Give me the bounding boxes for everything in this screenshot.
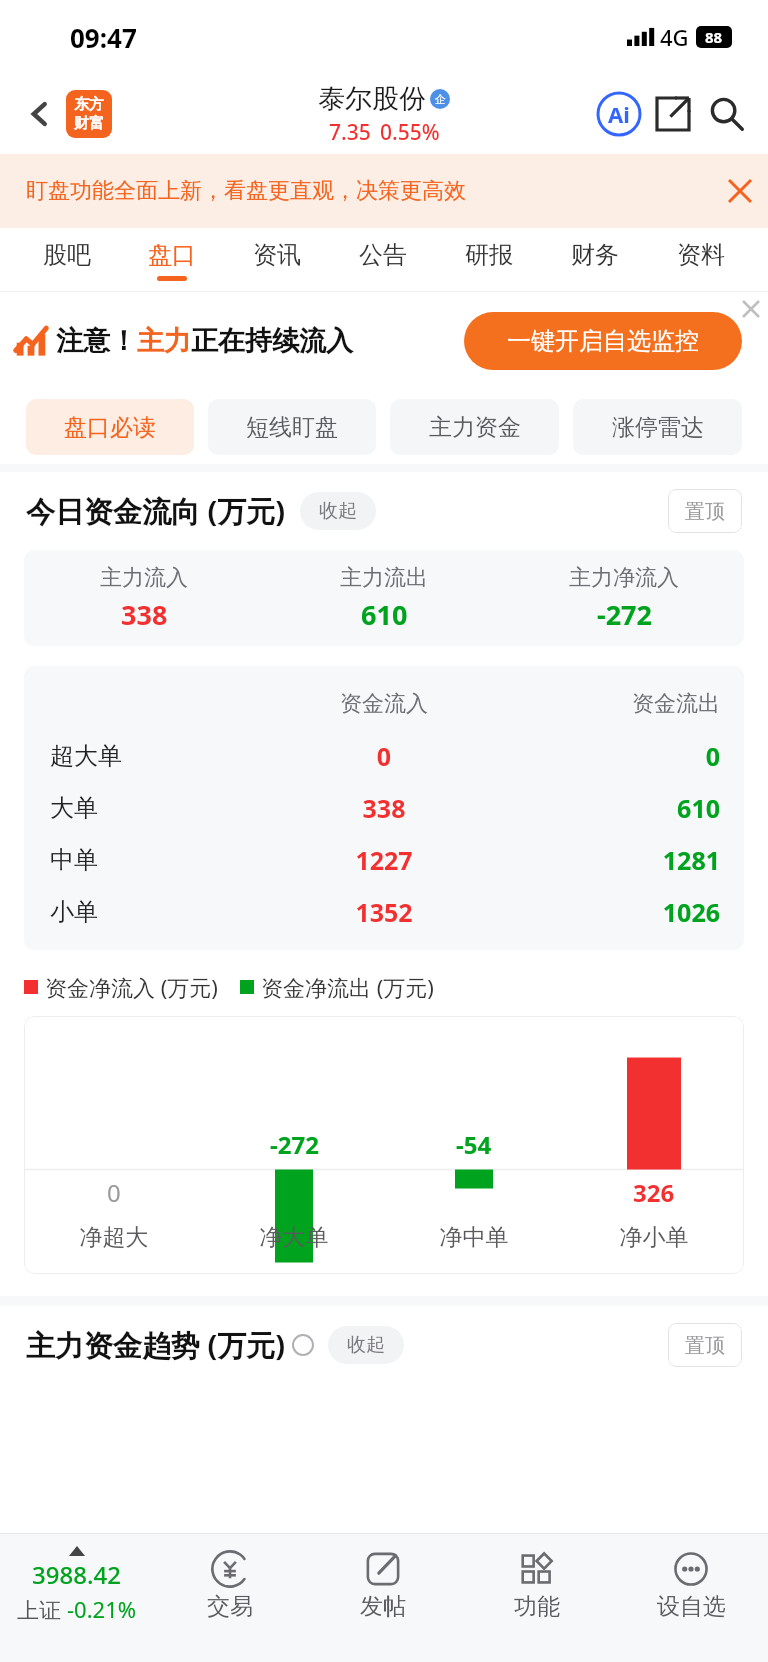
button[interactable]: 收起 [300, 492, 376, 530]
staticText: 7.35 [329, 118, 371, 147]
button[interactable]: 股吧 [14, 228, 119, 292]
button[interactable]: 财务 [542, 228, 648, 292]
staticText: 净中单 [384, 1223, 564, 1252]
staticText: -272 [597, 596, 652, 633]
staticText: 主力流入 [100, 564, 188, 592]
staticText: 置顶 [685, 1333, 725, 1358]
staticText: 0 [264, 739, 504, 773]
staticText: 1026 [504, 895, 720, 929]
staticText: 交易 [207, 1592, 253, 1621]
staticText: 资讯 [253, 240, 301, 270]
staticText: 资料 [677, 240, 725, 270]
staticText: 发帖 [360, 1592, 406, 1621]
button[interactable]: 3988.42 [0, 1534, 153, 1662]
staticText: 财富 [74, 114, 104, 133]
staticText: 正在持续流入 [191, 324, 353, 358]
button[interactable]: 置顶 [668, 489, 742, 533]
staticText: 净小单 [564, 1223, 744, 1252]
staticText: 股吧 [43, 240, 91, 270]
button[interactable]: 盘口 [119, 228, 224, 292]
staticText: 研报 [465, 240, 513, 270]
staticText: 1352 [264, 895, 504, 929]
staticText: 主力资金趋势 (万元) [26, 1325, 286, 1365]
staticText: 短线盯盘 [246, 413, 338, 442]
button[interactable]: 盯盘功能全面上新，看盘更直观，决策更高效 [0, 154, 768, 228]
button[interactable]: 发帖 [306, 1534, 460, 1662]
button[interactable]: 研报 [436, 228, 542, 292]
staticText: 东方 [74, 95, 104, 114]
button[interactable]: 中单 [24, 834, 744, 886]
staticText: 610 [361, 596, 408, 633]
button[interactable]: Share [646, 87, 700, 141]
staticText: 主力净流入 [569, 564, 679, 592]
staticText: -54 [456, 1128, 492, 1161]
button[interactable]: 资料 [648, 228, 754, 292]
staticText: 资金净流出 (万元) [261, 972, 434, 1002]
button[interactable]: 资讯 [224, 228, 330, 292]
button[interactable]: 大单 [24, 782, 744, 834]
staticText: 净超大 [24, 1223, 204, 1252]
staticText: 0 [107, 1176, 121, 1209]
staticText: 一键开启自选监控 [507, 326, 699, 356]
button[interactable]: 收起 [328, 1326, 404, 1364]
button[interactable]: 涨停雷达 [573, 399, 742, 455]
staticText: 338 [121, 596, 168, 633]
staticText: 326 [633, 1176, 675, 1209]
staticText: 上证 [17, 1594, 67, 1624]
staticText: -272 [270, 1128, 319, 1161]
button[interactable]: 超大单 [24, 730, 744, 782]
staticText: 主力资金 [429, 413, 521, 442]
button[interactable]: 设自选 [614, 1534, 768, 1662]
button[interactable]: Close ad [734, 292, 768, 326]
staticText: 盯盘功能全面上新，看盘更直观，决策更高效 [26, 177, 466, 205]
button[interactable]: 功能 [460, 1534, 614, 1662]
staticText: 610 [504, 791, 720, 825]
staticText: 企 [435, 92, 446, 106]
staticText: 公告 [359, 240, 407, 270]
staticText: 0 [504, 739, 720, 773]
staticText: 盘口必读 [64, 413, 156, 442]
staticText: 88 [705, 27, 723, 47]
staticText: 3988.42 [32, 1558, 121, 1591]
staticText: 大单 [50, 793, 264, 823]
staticText: 收起 [319, 499, 357, 523]
staticText: 338 [264, 791, 504, 825]
staticText: 今日资金流向 (万元) [26, 491, 286, 531]
button[interactable]: 小单 [24, 886, 744, 938]
button[interactable]: AI assistant [592, 87, 646, 141]
button[interactable]: East Money [66, 90, 112, 138]
staticText: 置顶 [685, 499, 725, 524]
staticText: 1281 [504, 843, 720, 877]
staticText: 小单 [50, 897, 264, 927]
staticText: 中单 [50, 845, 264, 875]
button[interactable]: 一键开启自选监控 [464, 312, 742, 370]
staticText: 收起 [347, 1333, 385, 1357]
button[interactable]: 交易 [153, 1534, 306, 1662]
staticText: 净大单 [204, 1223, 384, 1252]
staticText: 4G [660, 22, 689, 52]
staticText: -0.21% [67, 1594, 137, 1624]
staticText: 主力 [137, 324, 191, 358]
staticText: 泰尔股份 [318, 82, 426, 116]
staticText: 1227 [264, 843, 504, 877]
button[interactable]: 盘口必读 [26, 399, 194, 455]
button[interactable]: 0 [24, 1016, 744, 1274]
button[interactable]: Back [18, 92, 62, 136]
staticText: 功能 [514, 1592, 560, 1621]
button[interactable]: 主力资金 [390, 399, 559, 455]
staticText: 涨停雷达 [612, 413, 704, 442]
staticText: 财务 [571, 240, 619, 270]
button[interactable]: 公告 [330, 228, 436, 292]
staticText: 0.55% [380, 118, 440, 147]
staticText: 注意！ [56, 324, 137, 358]
button[interactable]: 置顶 [668, 1323, 742, 1367]
staticText: 09:47 [70, 20, 137, 55]
button[interactable]: Close banner [712, 163, 768, 219]
staticText: 设自选 [657, 1592, 726, 1621]
staticText: 主力流出 [340, 564, 428, 592]
staticText: Ai [608, 99, 630, 129]
staticText: 资金净流入 (万元) [45, 972, 218, 1002]
staticText: 资金流出 [504, 690, 720, 718]
button[interactable]: Search [700, 87, 754, 141]
button[interactable]: 短线盯盘 [208, 399, 376, 455]
